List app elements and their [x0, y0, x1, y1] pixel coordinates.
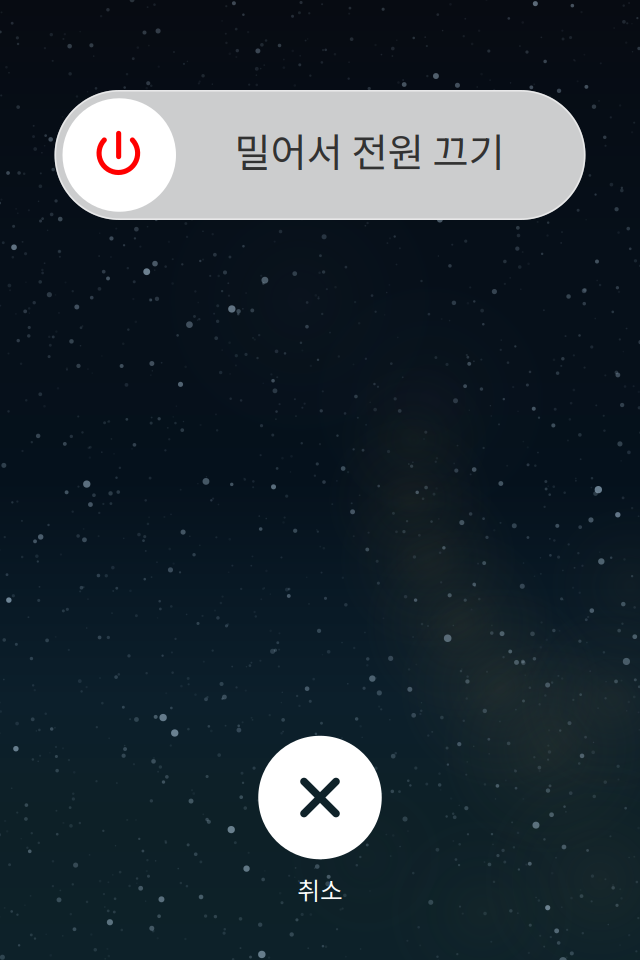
staticText: 밀어서 전원 끄기 — [234, 122, 504, 178]
staticText: 취소 — [297, 871, 343, 907]
button[interactable]: 취소 — [258, 736, 382, 907]
button[interactable]: Slide to power off — [54, 90, 585, 220]
